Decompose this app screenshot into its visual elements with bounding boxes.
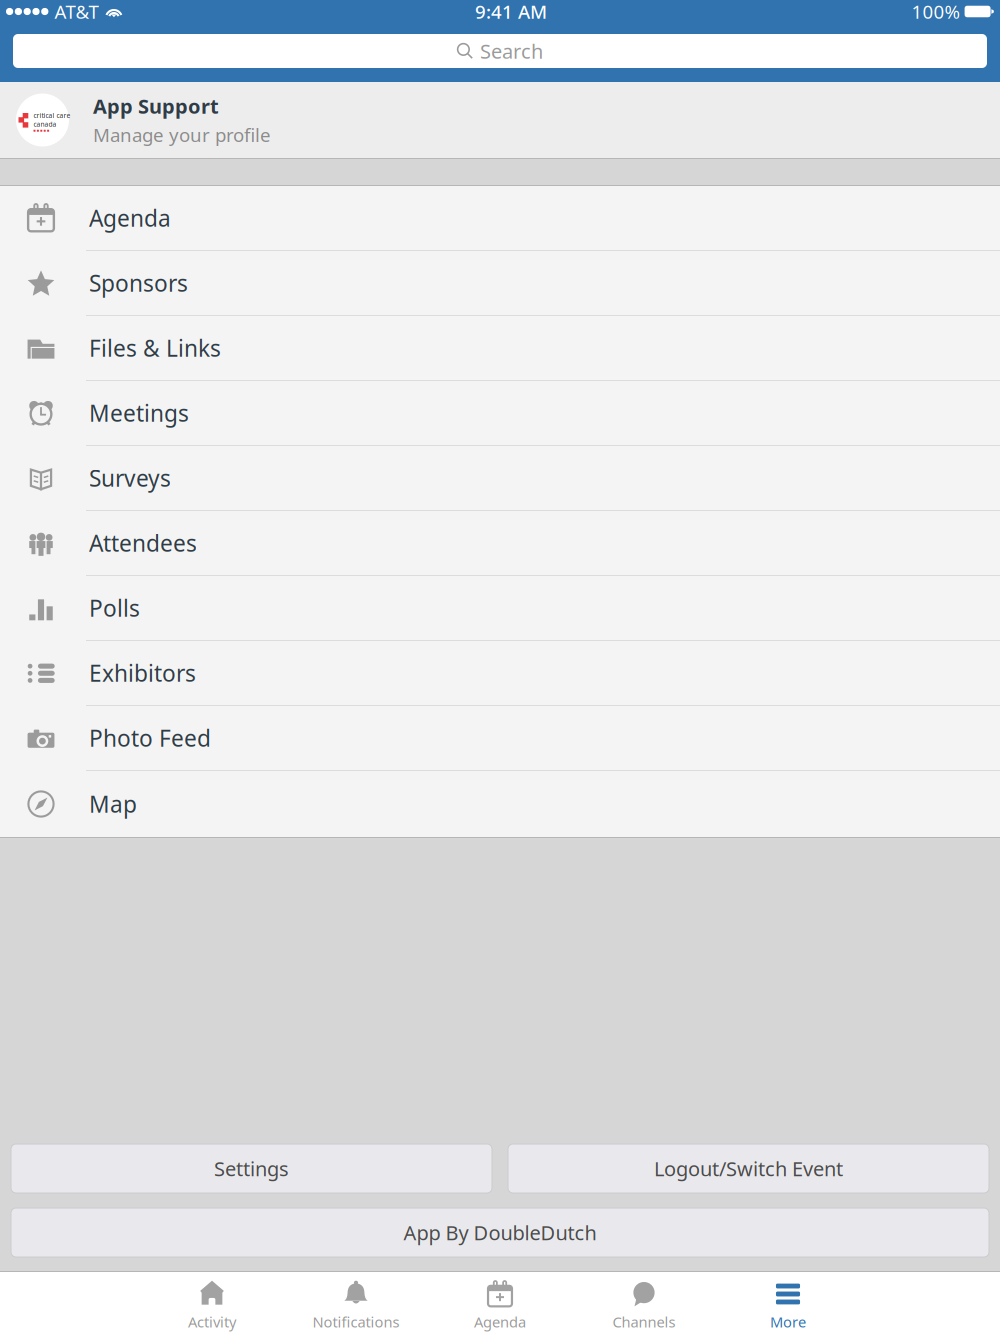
- staticText: Manage your profile: [93, 122, 271, 147]
- staticText: Polls: [89, 593, 140, 623]
- button[interactable]: Agenda: [0, 186, 1000, 251]
- button[interactable]: Channels: [572, 1272, 716, 1334]
- button[interactable]: critical care: [0, 82, 1000, 158]
- button[interactable]: Search: [0, 34, 1000, 82]
- staticText: canada: [33, 120, 56, 129]
- staticText: Notifications: [312, 1312, 399, 1331]
- button[interactable]: Attendees: [0, 511, 1000, 576]
- button[interactable]: Surveys: [0, 446, 1000, 511]
- staticText: Meetings: [89, 398, 189, 428]
- staticText: App By DoubleDutch: [403, 1219, 596, 1246]
- staticText: Agenda: [474, 1312, 526, 1331]
- staticText: More: [770, 1312, 806, 1331]
- staticText: Surveys: [89, 463, 171, 493]
- staticText: 100%: [912, 0, 961, 24]
- button[interactable]: Sponsors: [0, 251, 1000, 316]
- button[interactable]: Photo Feed: [0, 706, 1000, 771]
- staticText: Agenda: [89, 203, 171, 233]
- button[interactable]: Polls: [0, 576, 1000, 641]
- staticText: Logout/Switch Event: [654, 1155, 843, 1182]
- staticText: Activity: [188, 1312, 236, 1331]
- staticText: 9:41 AM: [475, 0, 547, 24]
- staticText: Exhibitors: [89, 658, 196, 688]
- staticText: Search: [480, 38, 543, 64]
- staticText: Files & Links: [89, 333, 221, 363]
- button[interactable]: Agenda: [428, 1272, 572, 1334]
- button[interactable]: Settings: [11, 1144, 492, 1193]
- button[interactable]: Files & Links: [0, 316, 1000, 381]
- button[interactable]: More: [716, 1272, 860, 1334]
- staticText: Channels: [612, 1312, 675, 1331]
- staticText: Photo Feed: [89, 723, 211, 753]
- staticText: Sponsors: [89, 268, 188, 298]
- button[interactable]: Activity: [140, 1272, 284, 1334]
- button[interactable]: Exhibitors: [0, 641, 1000, 706]
- staticText: critical care: [33, 111, 70, 120]
- staticText: App Support: [93, 93, 219, 119]
- staticText: AT&T: [54, 0, 98, 24]
- staticText: Attendees: [89, 528, 197, 558]
- button[interactable]: App By DoubleDutch: [11, 1208, 989, 1257]
- button[interactable]: Meetings: [0, 381, 1000, 446]
- staticText: Map: [89, 789, 137, 819]
- button[interactable]: Logout/Switch Event: [508, 1144, 989, 1193]
- button[interactable]: Map: [0, 771, 1000, 837]
- button[interactable]: Notifications: [284, 1272, 428, 1334]
- staticText: Settings: [214, 1155, 289, 1182]
